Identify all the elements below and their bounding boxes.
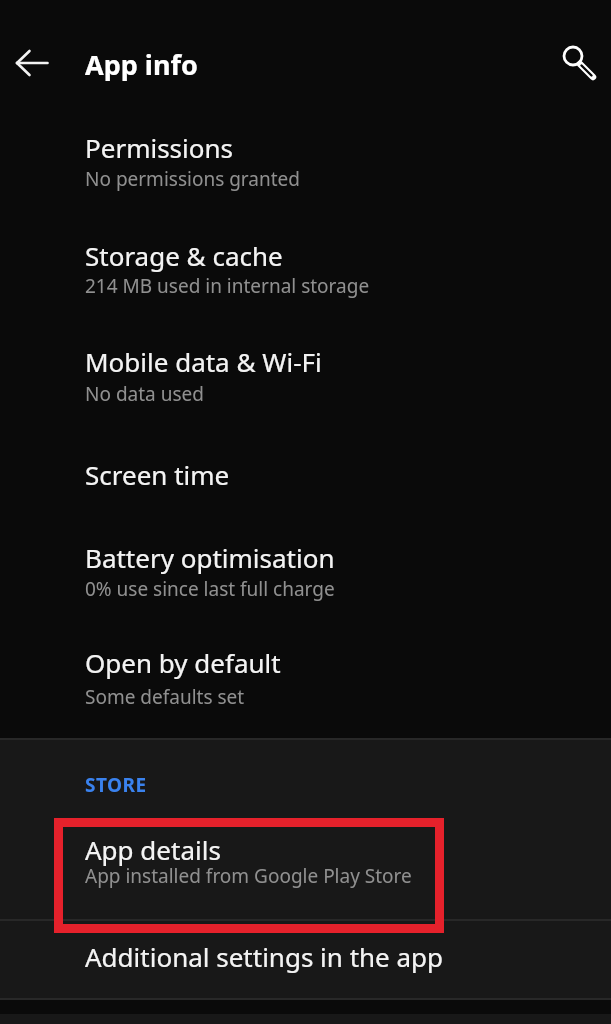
button[interactable] bbox=[0, 116, 611, 198]
staticText: Screen time bbox=[85, 457, 230, 492]
button[interactable] bbox=[0, 925, 611, 983]
staticText: Mobile data & Wi-Fi bbox=[85, 344, 322, 379]
staticText: Battery optimisation bbox=[85, 540, 335, 575]
staticText: Permissions bbox=[85, 130, 234, 165]
staticText: Some defaults set bbox=[85, 684, 245, 710]
staticText: App details bbox=[85, 832, 221, 867]
button[interactable] bbox=[0, 443, 611, 501]
button[interactable] bbox=[0, 224, 611, 305]
button[interactable] bbox=[549, 32, 601, 84]
staticText: No data used bbox=[85, 381, 204, 407]
staticText: No permissions granted bbox=[85, 166, 300, 192]
button[interactable] bbox=[0, 631, 611, 716]
staticText: Additional settings in the app bbox=[85, 939, 444, 974]
staticText: Storage & cache bbox=[85, 238, 283, 273]
button[interactable] bbox=[0, 818, 611, 895]
button[interactable] bbox=[0, 526, 611, 608]
staticText: App info bbox=[85, 46, 198, 83]
button[interactable] bbox=[8, 39, 56, 87]
staticText: 214 MB used in internal storage bbox=[85, 273, 370, 299]
staticText: Open by default bbox=[85, 645, 281, 680]
staticText: App installed from Google Play Store bbox=[85, 863, 412, 889]
staticText: STORE bbox=[85, 772, 147, 798]
button[interactable] bbox=[0, 330, 611, 413]
staticText: 0% use since last full charge bbox=[85, 576, 335, 602]
